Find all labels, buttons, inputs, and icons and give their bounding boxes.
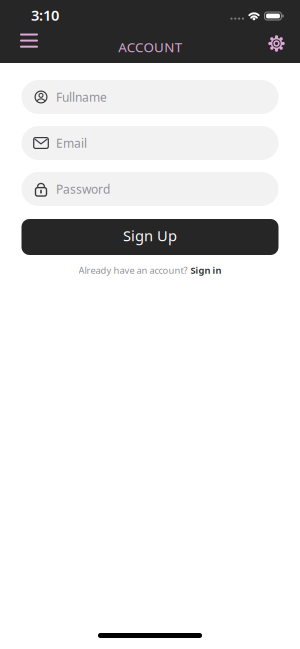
staticText: Sign Up	[123, 226, 177, 245]
button[interactable]: Email	[21, 126, 278, 160]
button[interactable]: Sign Up	[21, 219, 278, 255]
staticText: ACCOUNT	[118, 38, 182, 56]
button[interactable]: Menu	[0, 33, 38, 47]
button[interactable]: Fullname	[21, 80, 278, 114]
staticText: 3:10	[31, 5, 59, 25]
staticText: Email	[56, 135, 87, 151]
staticText: Fullname	[56, 89, 107, 105]
staticText: Sign in	[190, 264, 221, 276]
button[interactable]: Settings	[268, 35, 300, 52]
button[interactable]: Sign in	[190, 264, 221, 276]
staticText: Already have an account?	[78, 264, 187, 276]
button[interactable]: Password	[21, 172, 278, 206]
staticText: Password	[56, 181, 110, 197]
